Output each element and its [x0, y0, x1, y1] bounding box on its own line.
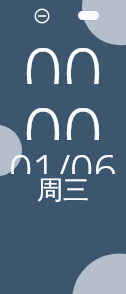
button[interactable]: Do not disturb: [33, 7, 51, 25]
button[interactable]: Battery: [78, 11, 99, 20]
staticText: 周三: [0, 174, 126, 202]
staticText: 00: [0, 84, 126, 140]
staticText: 00: [0, 24, 126, 84]
staticText: 01/06: [0, 140, 126, 174]
button[interactable]: 00: [0, 24, 126, 202]
